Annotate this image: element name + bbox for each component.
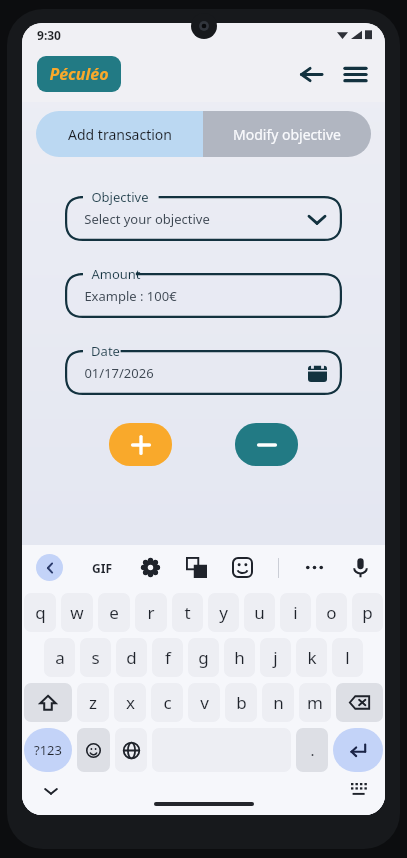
button[interactable]: x — [114, 683, 146, 722]
button[interactable]: Back — [297, 60, 325, 88]
button[interactable]: f — [152, 638, 183, 677]
button[interactable]: Add transaction — [36, 111, 203, 157]
button[interactable]: Back — [36, 554, 63, 581]
staticText: i — [293, 601, 298, 624]
button[interactable]: Translate — [186, 557, 207, 578]
button[interactable]: Change language — [115, 728, 147, 772]
staticText: o — [326, 601, 337, 624]
button[interactable]: b — [225, 683, 257, 722]
staticText: 9:30 — [37, 27, 61, 43]
staticText: Select your objective — [84, 210, 210, 228]
button[interactable]: Shift — [24, 683, 72, 722]
button[interactable]: z — [77, 683, 109, 722]
staticText: q — [35, 601, 46, 624]
button[interactable]: Modify objective — [203, 111, 371, 157]
button[interactable]: d — [116, 638, 147, 677]
button[interactable]: Stickers — [232, 557, 253, 578]
button[interactable]: a — [44, 638, 75, 677]
staticText: k — [307, 646, 317, 669]
staticText: v — [200, 691, 209, 714]
staticText: Modify objective — [233, 125, 341, 144]
button[interactable]: e — [98, 593, 130, 632]
staticText: x — [126, 691, 135, 714]
staticText: g — [198, 646, 209, 669]
button[interactable]: Péculéo — [37, 56, 121, 92]
staticText: Amount — [91, 265, 141, 283]
staticText: b — [236, 691, 247, 714]
staticText: h — [234, 646, 245, 669]
staticText: GIF — [92, 560, 112, 576]
staticText: d — [126, 646, 137, 669]
staticText: Add transaction — [68, 125, 172, 144]
staticText: r — [147, 601, 155, 624]
staticText: y — [219, 601, 228, 624]
button[interactable]: Enter — [333, 728, 383, 772]
staticText: t — [184, 601, 191, 624]
staticText: u — [254, 601, 265, 624]
button[interactable]: Switch keyboard — [349, 781, 369, 801]
button[interactable]: n — [262, 683, 294, 722]
button[interactable]: h — [224, 638, 255, 677]
staticText: Example : 100€ — [84, 287, 177, 305]
button[interactable]: g — [188, 638, 219, 677]
button[interactable]: Subtract — [235, 423, 298, 466]
staticText: w — [70, 601, 84, 624]
button[interactable]: Select your objective — [65, 196, 342, 241]
button[interactable]: l — [332, 638, 363, 677]
button[interactable]: GIF — [89, 557, 115, 579]
button[interactable]: y — [208, 593, 239, 632]
button[interactable]: k — [296, 638, 327, 677]
button[interactable]: u — [244, 593, 275, 632]
staticText: a — [55, 646, 65, 669]
staticText: ?123 — [34, 741, 62, 759]
staticText: . — [310, 740, 315, 760]
button[interactable]: t — [172, 593, 203, 632]
button[interactable]: Backspace — [336, 683, 383, 722]
button[interactable]: m — [299, 683, 331, 722]
staticText: Date — [91, 342, 120, 360]
button[interactable]: r — [135, 593, 167, 632]
staticText: s — [91, 646, 100, 669]
staticText: z — [89, 691, 97, 714]
staticText: p — [362, 601, 373, 624]
button[interactable]: j — [260, 638, 291, 677]
button[interactable]: . — [296, 728, 328, 772]
staticText: 01/17/2026 — [84, 364, 154, 382]
button[interactable]: p — [352, 593, 383, 632]
button[interactable]: Hide keyboard — [38, 778, 64, 804]
staticText: Objective — [91, 188, 149, 206]
button[interactable]: Settings — [140, 557, 161, 578]
staticText: l — [345, 646, 350, 669]
staticText: f — [165, 646, 171, 669]
button[interactable]: Add — [109, 423, 172, 466]
button[interactable]: Emoji — [77, 728, 110, 772]
button[interactable]: w — [61, 593, 93, 632]
staticText: j — [273, 646, 278, 669]
button[interactable]: c — [151, 683, 183, 722]
button[interactable]: 01/17/2026 — [65, 350, 342, 395]
button[interactable]: Example : 100€ — [65, 273, 342, 318]
button[interactable]: ?123 — [24, 728, 72, 772]
staticText: n — [273, 691, 284, 714]
button[interactable]: Menu — [341, 60, 369, 88]
staticText: m — [307, 691, 323, 714]
button[interactable]: i — [280, 593, 311, 632]
button[interactable]: q — [24, 593, 56, 632]
staticText: c — [163, 691, 172, 714]
button[interactable]: s — [80, 638, 111, 677]
button[interactable]: More options — [304, 557, 325, 578]
button[interactable]: v — [188, 683, 220, 722]
staticText: e — [109, 601, 119, 624]
button[interactable]: o — [316, 593, 347, 632]
staticText: Péculéo — [49, 63, 109, 85]
button[interactable]: Voice input — [350, 557, 371, 578]
